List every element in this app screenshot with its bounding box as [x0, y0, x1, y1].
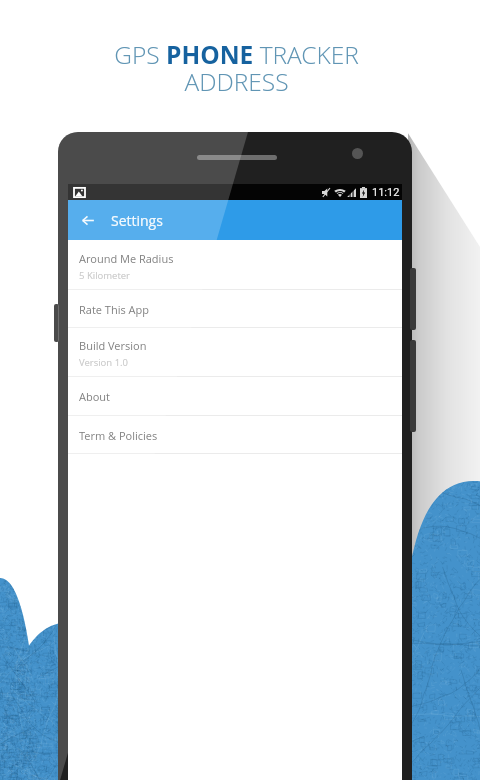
- staticText: 11:12: [372, 186, 400, 199]
- button[interactable]: Around Me Radius: [68, 240, 402, 290]
- staticText: Around Me Radius: [79, 251, 174, 266]
- button[interactable]: Term & Policies: [68, 416, 402, 454]
- staticText: GPS PHONE TRACKER: [114, 38, 359, 71]
- button[interactable]: Rate This App: [68, 290, 402, 328]
- staticText: Rate This App: [79, 302, 149, 317]
- button[interactable]: About: [68, 377, 402, 416]
- staticText: Version 1.0: [79, 356, 129, 369]
- staticText: ADDRESS: [184, 65, 289, 98]
- button[interactable]: Back: [68, 200, 108, 240]
- button[interactable]: Build Version: [68, 328, 402, 377]
- staticText: Term & Policies: [79, 428, 158, 443]
- staticText: About: [79, 389, 110, 404]
- staticText: 5 Kilometer: [79, 269, 131, 282]
- staticText: Settings: [111, 211, 163, 230]
- staticText: Build Version: [79, 338, 147, 353]
